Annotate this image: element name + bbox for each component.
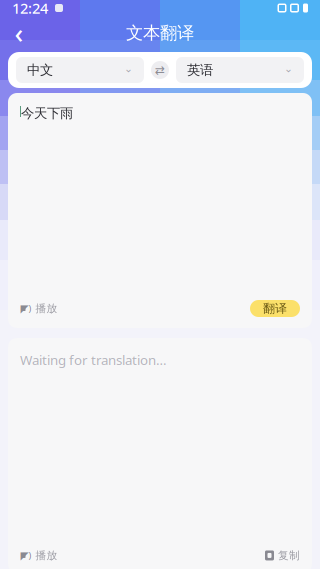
staticText: 今天下雨: [21, 105, 73, 121]
staticText: 中文: [27, 62, 53, 78]
staticText: 翻译: [263, 301, 287, 316]
staticText: ): [28, 549, 31, 562]
staticText: ⌄: [284, 62, 293, 74]
button[interactable]: 中文: [16, 57, 144, 83]
button[interactable]: ◤: [20, 549, 57, 562]
button[interactable]: Back: [4, 20, 34, 46]
staticText: ◤: [20, 302, 28, 314]
button[interactable]: 英语: [176, 57, 304, 83]
staticText: 复制: [278, 549, 300, 562]
staticText: 播放: [35, 549, 57, 562]
staticText: ⇄: [155, 63, 165, 77]
button[interactable]: 翻译: [250, 300, 300, 317]
staticText: 12:24: [12, 0, 48, 18]
staticText: 文本翻译: [126, 22, 194, 44]
button[interactable]: ◤: [20, 302, 57, 315]
button[interactable]: 复制: [265, 549, 300, 562]
staticText: 播放: [35, 302, 57, 315]
staticText: ): [28, 302, 31, 315]
staticText: Waiting for translation…: [20, 351, 167, 369]
staticText: ‹: [14, 15, 23, 51]
staticText: ◤: [20, 549, 28, 561]
staticText: 英语: [187, 62, 213, 78]
button[interactable]: Swap languages: [151, 61, 169, 79]
staticText: ⌄: [124, 62, 133, 74]
